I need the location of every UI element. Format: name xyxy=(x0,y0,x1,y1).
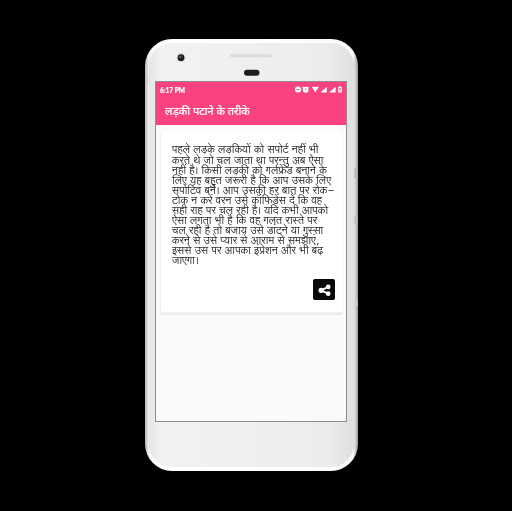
button[interactable]: लड़की पटाने के तरीके xyxy=(156,97,346,125)
staticText: लड़की पटाने के तरीके xyxy=(165,103,250,118)
staticText: 6:17 PM xyxy=(160,86,186,94)
staticText: पहले लड़के लड़कियों को सपोर्ट नहीं भी कर… xyxy=(172,142,335,269)
button[interactable]: Share xyxy=(313,279,335,300)
staticText: पहले लड़के लड़कियों को सपोर्ट नहीं भी कर… xyxy=(172,142,335,269)
